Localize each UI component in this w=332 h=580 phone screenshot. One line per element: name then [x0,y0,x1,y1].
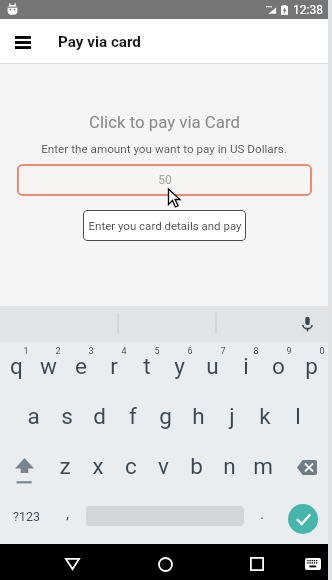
staticText: f [129,403,137,429]
staticText: d [93,403,106,429]
button[interactable]: Back [49,546,95,580]
staticText: 7 [220,346,226,357]
staticText: 8 [253,346,259,357]
button[interactable]: b [180,442,213,492]
button[interactable]: t [130,342,163,392]
button[interactable]: h [180,392,213,442]
staticText: 6 [187,346,193,357]
staticText: . [260,505,264,523]
staticText: w [40,353,57,379]
button[interactable]: , [52,492,86,542]
button[interactable]: z [48,442,81,492]
staticText: y [174,353,185,379]
button[interactable]: . [244,492,278,542]
staticText: , [66,505,69,523]
staticText: t [143,353,151,379]
staticText: Click to pay via Card [89,112,240,132]
button[interactable]: Enter [278,494,328,544]
button[interactable]: e [64,342,97,392]
staticText: q [10,353,23,379]
staticText: u [206,353,219,379]
button[interactable]: n [213,442,246,492]
button[interactable]: Home [142,546,188,580]
button[interactable]: Hide keyboard [294,546,332,580]
button[interactable]: q [0,342,32,392]
button[interactable]: w [32,342,64,392]
staticText: 4 [121,346,127,357]
staticText: c [125,453,137,479]
staticText: p [305,353,318,379]
button[interactable]: g [147,392,180,442]
button[interactable]: o [262,342,295,392]
button[interactable]: f [114,392,147,442]
button[interactable]: p [295,342,328,392]
staticText: o [272,353,285,379]
staticText: b [190,453,203,479]
button[interactable]: r [97,342,130,392]
button[interactable]: Open navigation menu [9,28,37,56]
staticText: 1 [23,346,29,357]
button[interactable]: Shift [0,442,48,492]
staticText: 3 [88,346,94,357]
staticText: Enter the amount you want to pay in US D… [41,142,287,156]
button[interactable]: k [246,392,279,442]
button[interactable]: a [15,392,48,442]
staticText: e [75,353,87,379]
staticText: 5 [154,346,160,357]
button[interactable]: Backspace [279,442,328,492]
staticText: a [27,403,40,429]
staticText: h [192,403,205,429]
staticText: m [253,453,273,479]
button[interactable]: u [196,342,229,392]
staticText: z [59,453,71,479]
staticText: s [61,403,73,429]
button[interactable]: v [147,442,180,492]
staticText: i [243,353,249,379]
button[interactable]: Enter you card details and pay [83,210,246,241]
button[interactable]: i [229,342,262,392]
button[interactable]: s [48,392,81,442]
button[interactable]: Voice input [296,313,318,335]
staticText: r [110,353,118,379]
button[interactable]: x [81,442,114,492]
button[interactable]: y [163,342,196,392]
staticText: 12:38 [293,3,323,17]
staticText: n [223,453,236,479]
staticText: 50 [158,173,172,187]
staticText: j [229,403,235,429]
staticText: Enter you card details and pay [88,219,242,232]
staticText: Pay via card [58,33,141,51]
button[interactable]: m [246,442,279,492]
staticText: 9 [286,346,292,357]
button[interactable]: Recent apps [234,546,280,580]
staticText: x [92,453,104,479]
staticText: 0 [319,346,325,357]
button[interactable]: l [279,392,312,442]
staticText: v [158,453,169,479]
button[interactable]: d [81,392,114,442]
staticText: g [159,403,172,429]
staticText: 2 [55,346,61,357]
staticText: ?123 [13,509,40,524]
button[interactable]: j [213,392,246,442]
staticText: k [259,403,271,429]
button[interactable]: 50 [17,164,312,196]
staticText: l [295,403,301,429]
button[interactable]: ?123 [0,492,52,542]
button[interactable]: c [114,442,147,492]
